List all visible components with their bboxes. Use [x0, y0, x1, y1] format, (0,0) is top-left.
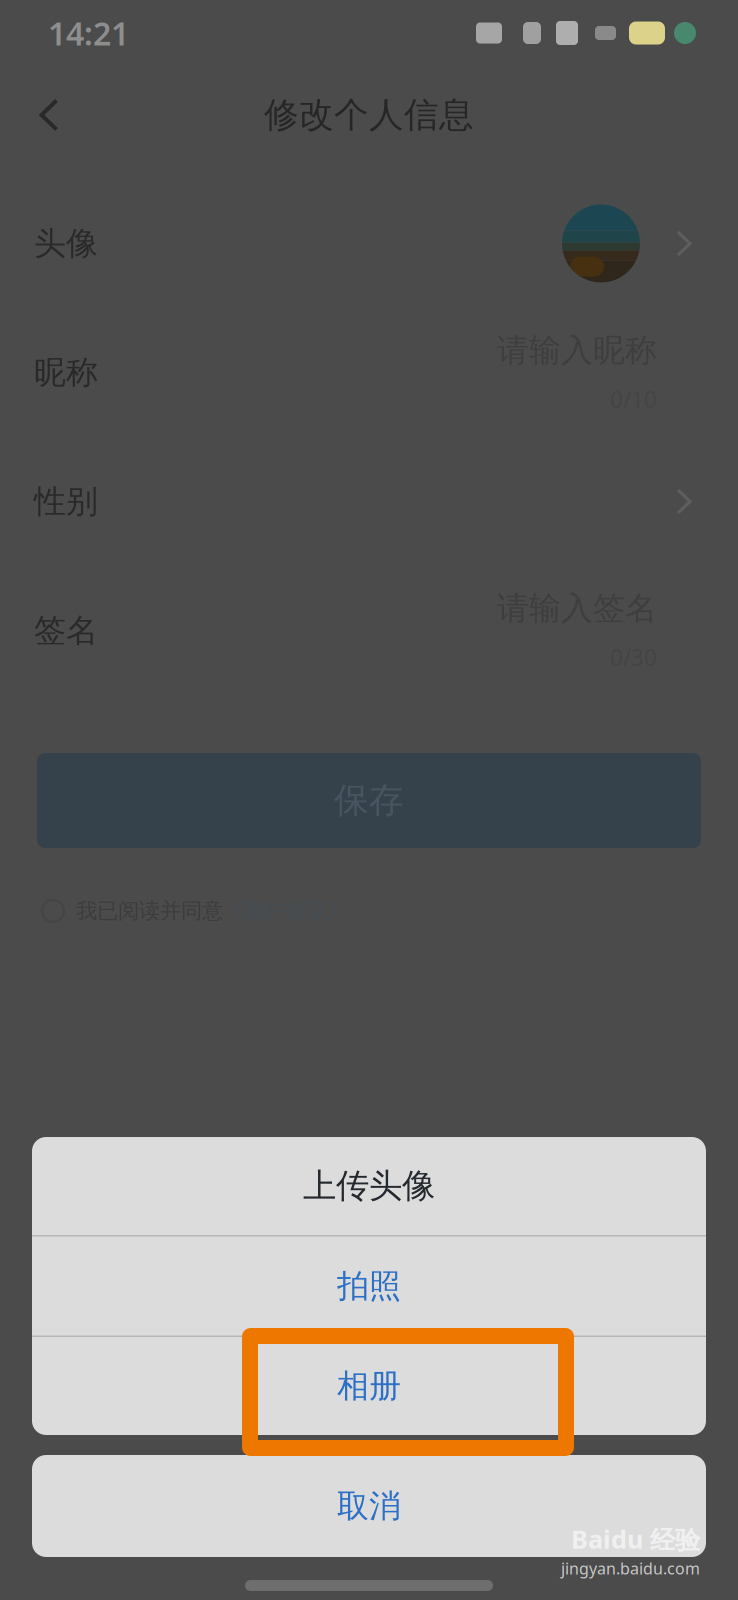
button[interactable]: 保存: [0, 695, 738, 848]
staticText: 请输入签名: [497, 589, 657, 628]
staticText: 修改个人信息: [264, 94, 474, 136]
staticText: jingyan.baidu.com: [561, 1558, 700, 1579]
staticText: 请输入昵称: [497, 331, 657, 370]
staticText: 头像: [34, 224, 98, 263]
button[interactable]: 返回: [16, 82, 82, 148]
staticText: 相册: [337, 1366, 401, 1406]
staticText: 拍照: [337, 1266, 401, 1306]
staticText: 取消: [337, 1486, 401, 1526]
button[interactable]: 拍照: [32, 1236, 706, 1335]
button[interactable]: 取消: [32, 1455, 706, 1557]
button[interactable]: 头像: [0, 179, 738, 308]
staticText: 性别: [34, 482, 98, 521]
staticText: 14:21: [48, 12, 129, 54]
button[interactable]: 相册: [32, 1337, 706, 1435]
staticText: 签名: [34, 611, 98, 650]
staticText: 上传头像: [303, 1165, 435, 1206]
staticText: 保存: [334, 779, 404, 822]
staticText: Baidu 经验: [571, 1522, 700, 1556]
staticText: 我已阅读并同意: [76, 898, 223, 924]
staticText: 昵称: [34, 353, 98, 392]
